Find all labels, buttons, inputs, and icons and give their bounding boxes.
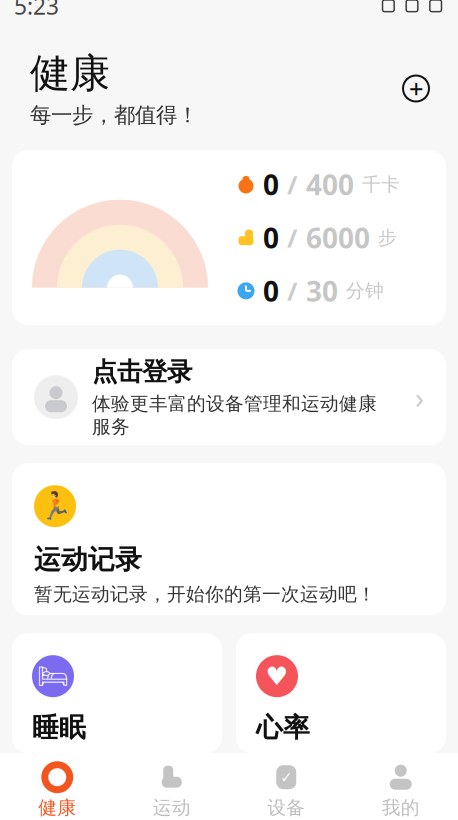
staticText: 400 bbox=[306, 166, 354, 203]
staticText: 点击登录 bbox=[92, 356, 192, 387]
staticText: / bbox=[287, 168, 298, 201]
staticText: 🏃 bbox=[38, 491, 71, 521]
staticText: 🛏 bbox=[37, 662, 69, 691]
staticText: / bbox=[287, 274, 298, 308]
button[interactable]: 点击登录 bbox=[0, 325, 458, 445]
staticText: 30 bbox=[306, 272, 338, 309]
button[interactable]: 运动 bbox=[114, 753, 229, 820]
staticText: 5:23 bbox=[14, 0, 59, 21]
staticText: 体验更丰富的设备管理和运动健康服务 bbox=[92, 392, 377, 438]
staticText: 暂无运动记录，开始你的第一次运动吧！ bbox=[34, 583, 376, 606]
staticText: 运动 bbox=[153, 796, 191, 819]
staticText: 每一步，都值得！ bbox=[30, 102, 198, 128]
staticText: › bbox=[415, 378, 424, 417]
staticText: 我的 bbox=[382, 796, 420, 819]
button[interactable]: 健康 bbox=[0, 753, 114, 820]
button[interactable]: 我的 bbox=[343, 753, 458, 820]
staticText: 0 bbox=[263, 166, 279, 203]
staticText: 步 bbox=[378, 226, 397, 249]
staticText: 健康 bbox=[30, 49, 110, 98]
staticText: 千卡 bbox=[362, 173, 400, 196]
button[interactable]: 添加 bbox=[396, 68, 436, 108]
staticText: 健康 bbox=[38, 796, 76, 819]
staticText: 运动记录 bbox=[34, 543, 142, 576]
staticText: 0 bbox=[263, 219, 279, 256]
button[interactable]: ✓ bbox=[229, 753, 343, 820]
staticText: 0 bbox=[263, 272, 279, 309]
staticText: 设备 bbox=[267, 796, 305, 819]
staticText: 6000 bbox=[306, 219, 370, 256]
staticText: 心率 bbox=[256, 711, 310, 744]
staticText: + bbox=[409, 72, 423, 105]
staticText: 睡眠 bbox=[32, 711, 86, 744]
button[interactable]: ♥ bbox=[236, 633, 446, 753]
staticText: 分钟 bbox=[346, 279, 384, 302]
staticText: ♥ bbox=[265, 662, 288, 691]
staticText: / bbox=[287, 221, 298, 254]
button[interactable]: 🏃 bbox=[0, 445, 458, 615]
staticText: ✓ bbox=[280, 769, 292, 785]
button[interactable]: 🛏 bbox=[12, 633, 222, 753]
